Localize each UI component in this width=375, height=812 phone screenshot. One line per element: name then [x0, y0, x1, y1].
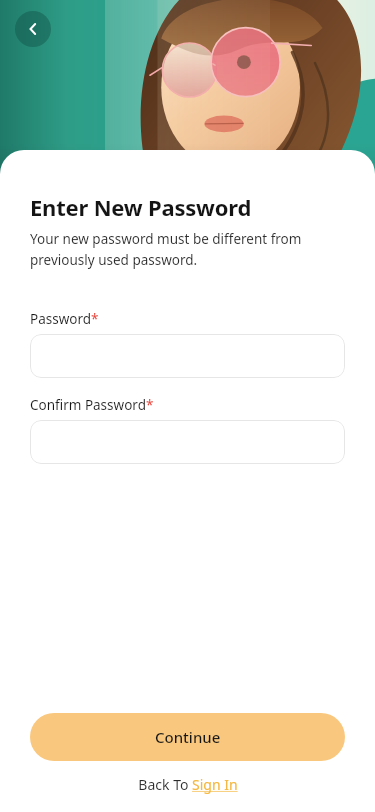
- staticText: Back To Sign In: [138, 775, 238, 794]
- staticText: Your new password must be different from…: [30, 230, 333, 269]
- button[interactable]: Continue: [30, 713, 345, 761]
- staticText: Password*: [30, 310, 99, 328]
- staticText: Enter New Password: [30, 192, 252, 222]
- button[interactable]: Back: [15, 11, 51, 47]
- button[interactable]: [30, 334, 345, 378]
- staticText: Continue: [155, 727, 221, 747]
- staticText: Confirm Password*: [30, 396, 154, 414]
- button[interactable]: Back To Sign In: [0, 775, 375, 794]
- button[interactable]: [30, 420, 345, 464]
